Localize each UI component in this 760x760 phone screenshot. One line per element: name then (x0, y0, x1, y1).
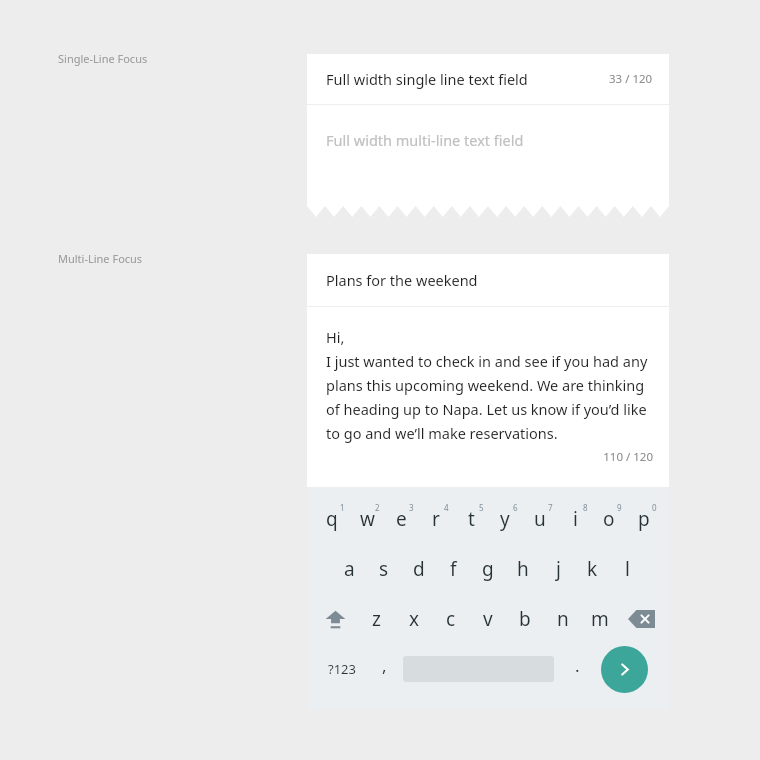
staticText: ?123 (328, 660, 356, 678)
button[interactable]: e (387, 494, 415, 544)
button[interactable]: Shift (318, 594, 352, 644)
staticText: 110 / 120 (326, 449, 653, 465)
staticText: j (556, 556, 561, 582)
staticText: m (591, 606, 609, 632)
staticText: t (468, 506, 475, 532)
staticText: 5 (479, 502, 484, 513)
button[interactable]: r (422, 494, 450, 544)
button[interactable]: c (438, 594, 464, 644)
staticText: c (446, 606, 456, 632)
staticText: 4 (444, 502, 449, 513)
button[interactable]: Full width multi-line text field (307, 105, 669, 217)
staticText: Full width single line text field (326, 69, 528, 89)
staticText: 2 (375, 502, 380, 513)
staticText: k (587, 556, 598, 582)
button[interactable]: k (579, 544, 605, 594)
staticText: 1 (340, 502, 345, 513)
staticText: x (409, 606, 420, 632)
staticText: f (450, 556, 457, 582)
staticText: Multi-Line Focus (58, 251, 143, 266)
staticText: p (638, 506, 650, 532)
staticText: Full width multi-line text field (326, 130, 524, 150)
staticText: 33 / 120 (609, 71, 653, 87)
button[interactable]: o (595, 494, 623, 544)
staticText: h (517, 556, 529, 582)
button[interactable]: p (630, 494, 658, 544)
button[interactable]: m (587, 594, 613, 644)
staticText: b (519, 606, 531, 632)
staticText: q (326, 506, 338, 532)
staticText: 3 (409, 502, 414, 513)
button[interactable]: i (561, 494, 589, 544)
staticText: 0 (652, 502, 657, 513)
button[interactable]: f (440, 544, 466, 594)
staticText: s (379, 556, 389, 582)
button[interactable]: Backspace (624, 594, 658, 644)
button[interactable]: n (550, 594, 576, 644)
button[interactable]: Hi, I just wanted to check in and see if… (307, 307, 669, 487)
staticText: o (603, 506, 615, 532)
staticText: i (573, 506, 578, 532)
staticText: a (344, 556, 355, 582)
button[interactable]: s (371, 544, 397, 594)
staticText: Hi, I just wanted to check in and see if… (326, 327, 653, 443)
button[interactable]: q (318, 494, 346, 544)
button[interactable]: u (526, 494, 554, 544)
button[interactable]: w (353, 494, 381, 544)
staticText: d (413, 556, 425, 582)
button[interactable]: Plans for the weekend (307, 254, 669, 306)
button[interactable]: ?123 (319, 644, 365, 694)
button[interactable]: v (475, 594, 501, 644)
button[interactable]: x (401, 594, 427, 644)
button[interactable]: l (614, 544, 640, 594)
staticText: v (483, 606, 493, 632)
staticText: r (432, 506, 440, 532)
button[interactable]: b (512, 594, 538, 644)
button[interactable]: , (365, 644, 403, 694)
staticText: y (500, 506, 510, 532)
staticText: , (382, 654, 387, 677)
button[interactable]: Full width single line text field (307, 54, 669, 104)
button[interactable]: g (475, 544, 501, 594)
button[interactable]: h (510, 544, 536, 594)
staticText: l (625, 556, 630, 582)
staticText: u (534, 506, 546, 532)
staticText: Single-Line Focus (58, 51, 148, 66)
button[interactable]: . (554, 644, 601, 694)
staticText: 8 (583, 502, 588, 513)
staticText: n (557, 606, 569, 632)
button[interactable]: a (336, 544, 362, 594)
button[interactable]: t (457, 494, 485, 544)
button[interactable]: z (363, 594, 389, 644)
staticText: Plans for the weekend (326, 270, 478, 290)
button[interactable]: d (406, 544, 432, 594)
staticText: g (482, 556, 494, 582)
staticText: e (396, 506, 407, 532)
button[interactable]: Send (601, 646, 648, 693)
button[interactable]: y (491, 494, 519, 544)
staticText: . (575, 654, 580, 677)
button[interactable]: j (545, 544, 571, 594)
staticText: 7 (548, 502, 553, 513)
staticText: 6 (513, 502, 518, 513)
staticText: w (360, 506, 375, 532)
staticText: 9 (617, 502, 622, 513)
staticText: z (372, 606, 381, 632)
